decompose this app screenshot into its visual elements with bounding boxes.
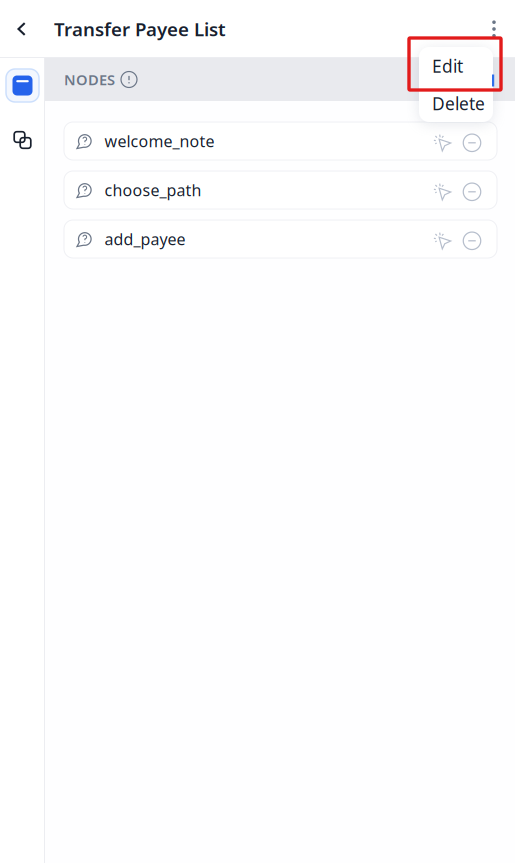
button[interactable]: More options — [473, 7, 515, 51]
button[interactable]: Back — [0, 7, 43, 51]
staticText: welcome_note — [104, 130, 214, 152]
button[interactable]: welcome_note — [64, 122, 497, 160]
staticText: choose_path — [104, 179, 201, 201]
staticText: add_payee — [104, 228, 185, 250]
staticText: Edit — [432, 54, 463, 77]
button[interactable]: Duplicate — [7, 125, 37, 155]
staticText: NODES — [64, 70, 115, 89]
button[interactable]: Delete — [419, 85, 493, 122]
button[interactable]: Edit — [419, 47, 493, 85]
staticText: Transfer Payee List — [54, 17, 226, 41]
button[interactable]: choose_path — [64, 171, 497, 209]
button[interactable]: add_payee — [64, 220, 497, 258]
button[interactable]: Board — [6, 69, 39, 102]
staticText: Delete — [432, 92, 485, 115]
